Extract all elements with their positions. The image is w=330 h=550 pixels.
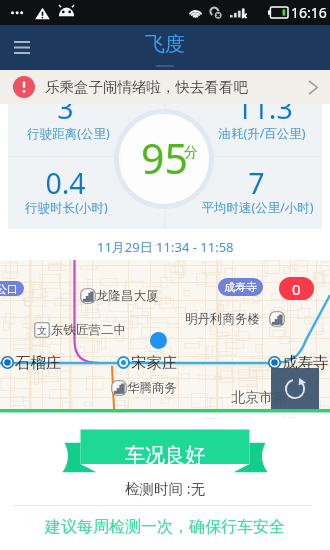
staticText: 行驶距离(公里) bbox=[27, 125, 110, 142]
button[interactable]: Menu bbox=[0, 25, 44, 70]
staticText: 宋家庄 bbox=[131, 353, 178, 373]
staticText: 建议每周检测一次，确保行车安全 bbox=[45, 517, 285, 537]
staticText: 3 bbox=[57, 89, 74, 128]
staticText: 成寿寺 bbox=[282, 353, 329, 373]
staticText: 明丹利商务楼 bbox=[185, 311, 260, 327]
staticText: 0.4 bbox=[45, 164, 86, 203]
staticText: 华腾商务 bbox=[127, 380, 177, 396]
staticText: 0 bbox=[292, 279, 301, 299]
staticText: 平均时速(公里/小时) bbox=[201, 199, 314, 216]
staticText: 石榴庄 bbox=[15, 353, 62, 373]
staticText: 车况良好 bbox=[125, 443, 205, 468]
staticText: 11.3 bbox=[236, 89, 293, 128]
staticText: 分 bbox=[184, 144, 198, 162]
staticText: 检测时间 :无 bbox=[125, 478, 206, 498]
staticText: 公口 bbox=[0, 282, 18, 296]
button[interactable]: 车况良好 bbox=[81, 430, 249, 480]
staticText: 龙隆昌大厦 bbox=[96, 288, 159, 304]
staticText: 东铁匠营二中 bbox=[51, 322, 126, 338]
staticText: 7 bbox=[248, 164, 265, 203]
staticText: 文 bbox=[37, 324, 47, 337]
staticText: 11月29日 11:34 - 11:58 bbox=[97, 238, 234, 254]
staticText: 行驶时长(小时) bbox=[25, 199, 108, 216]
button[interactable]: 乐乘盒子闹情绪啦，快去看看吧 bbox=[0, 70, 330, 104]
staticText: 95 bbox=[141, 130, 188, 186]
button[interactable]: Refresh bbox=[271, 368, 319, 409]
staticText: 16:16 bbox=[291, 3, 327, 22]
staticText: 成寿寺 bbox=[224, 280, 257, 294]
staticText: 油耗(升/百公里) bbox=[218, 125, 306, 142]
staticText: 飞度 bbox=[145, 32, 185, 57]
staticText: 北京市第 bbox=[231, 389, 287, 407]
staticText: 乐乘盒子闹情绪啦，快去看看吧 bbox=[45, 78, 248, 96]
